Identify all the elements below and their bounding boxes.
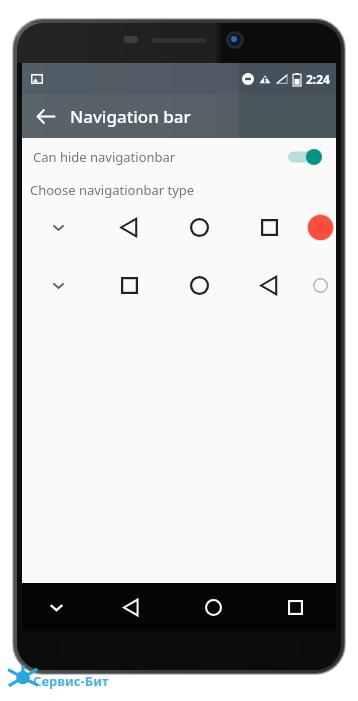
button[interactable] — [22, 262, 336, 308]
button[interactable]: Back — [90, 583, 172, 631]
button[interactable]: Home — [172, 583, 254, 631]
staticText: 2:24 — [306, 71, 330, 87]
button[interactable]: Can hide navigationbar — [22, 138, 336, 176]
button[interactable]: Recents — [254, 583, 336, 631]
staticText: Can hide navigationbar — [33, 148, 288, 166]
staticText: Choose navigationbar type — [30, 181, 195, 199]
button[interactable] — [22, 204, 336, 250]
staticText: Сервис-Бит — [33, 672, 109, 690]
button[interactable]: Hide navigation bar — [22, 583, 90, 631]
button[interactable]: Back — [22, 94, 70, 138]
staticText: Navigation bar — [70, 105, 191, 128]
